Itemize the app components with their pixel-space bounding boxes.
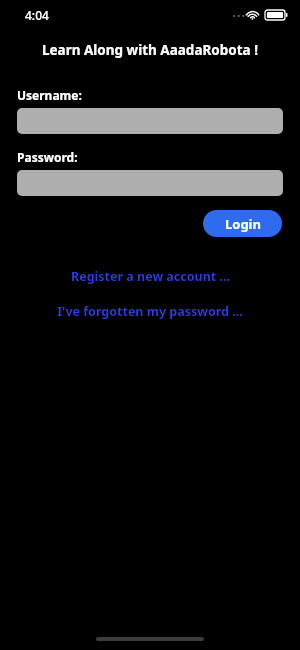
button[interactable]: I've forgotten my password ... [0,303,300,320]
staticText: Password: [17,149,78,165]
button[interactable]: Register a new account ... [0,268,300,285]
staticText: Login [225,215,261,233]
staticText: Learn Along with AaadaRobota ! [0,41,300,59]
button[interactable]: Login [203,210,282,237]
staticText: Username: [17,87,82,103]
button[interactable] [17,108,283,134]
staticText: I've forgotten my password ... [57,303,243,320]
staticText: Register a new account ... [71,268,230,285]
staticText: 4:04 [25,7,49,23]
button[interactable] [17,170,283,196]
